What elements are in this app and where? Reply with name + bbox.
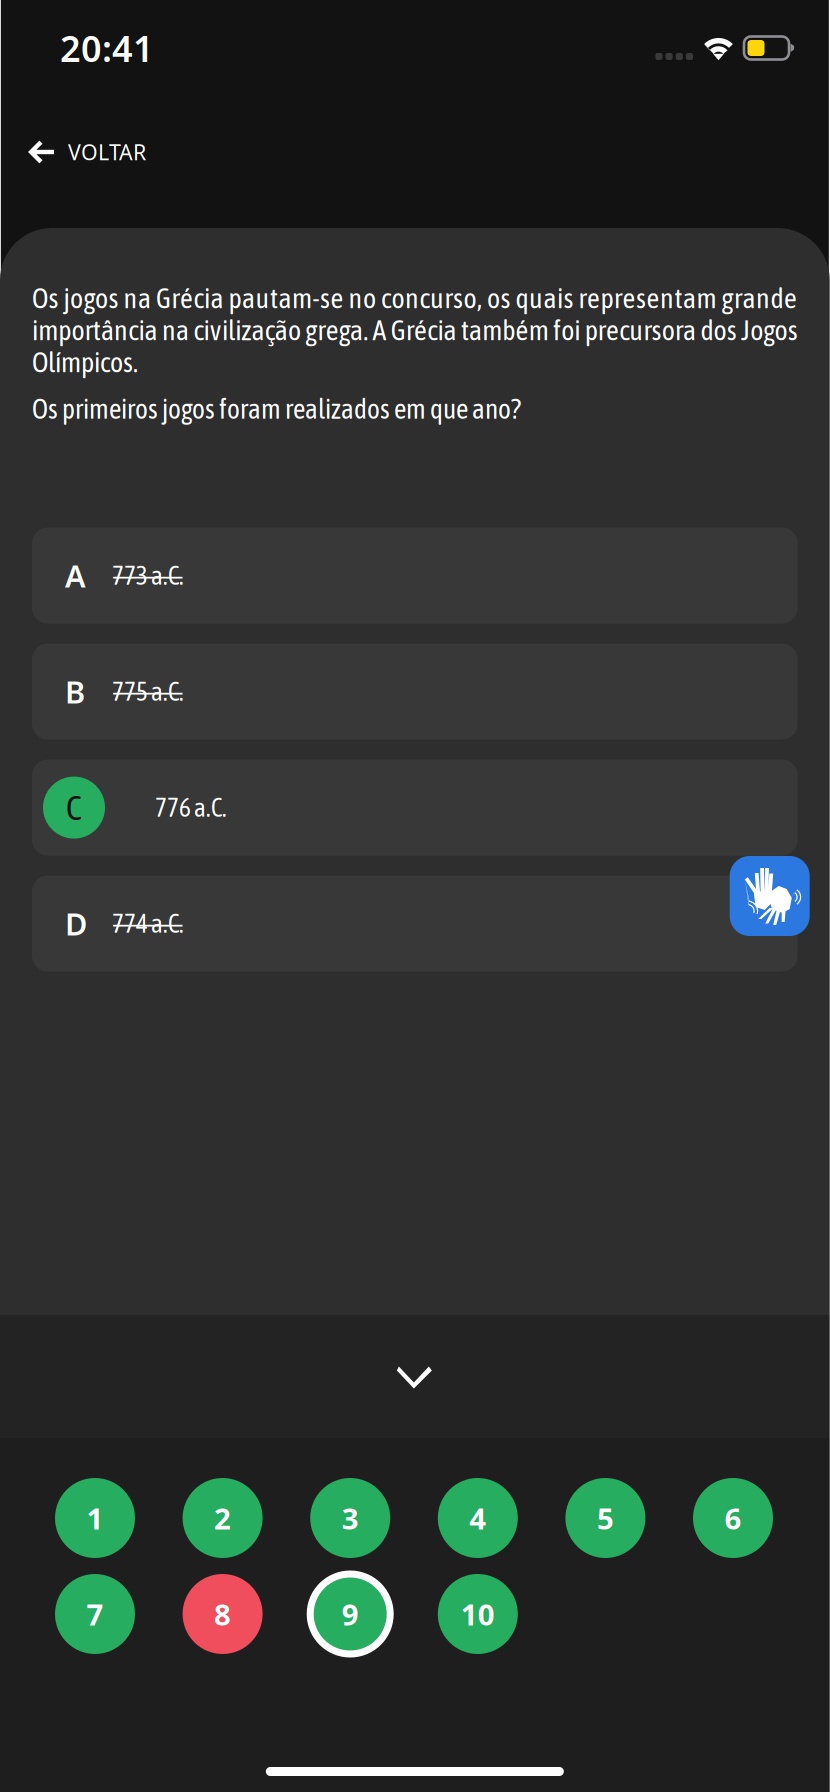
staticText: D <box>65 903 87 944</box>
staticText: 1 <box>86 1498 103 1537</box>
staticText: 6 <box>724 1498 741 1537</box>
staticText: 8 <box>214 1594 231 1633</box>
staticText: A <box>65 555 86 596</box>
staticText: Os primeiros jogos foram realizados em q… <box>32 393 521 425</box>
button[interactable]: 7 <box>55 1574 135 1654</box>
staticText: C <box>66 788 82 827</box>
button[interactable]: C <box>32 760 798 856</box>
staticText: 775 a.C. <box>112 677 184 706</box>
staticText: 774 a.C. <box>112 909 184 938</box>
button[interactable]: A <box>32 528 798 624</box>
button[interactable]: VOLTAR <box>0 124 146 200</box>
staticText: 10 <box>461 1594 495 1633</box>
button[interactable]: D <box>32 876 798 972</box>
staticText: 2 <box>214 1498 231 1537</box>
button[interactable]: B <box>32 644 798 740</box>
button[interactable]: Libras <box>730 856 810 936</box>
staticText: importância na civilização grega. A Gréc… <box>32 314 798 346</box>
staticText: B <box>65 671 85 712</box>
button[interactable]: 4 <box>438 1478 518 1558</box>
button[interactable]: 10 <box>438 1574 518 1654</box>
staticText: VOLTAR <box>68 138 146 166</box>
staticText: 20:41 <box>60 24 154 72</box>
staticText: 776 a.C. <box>155 793 227 822</box>
staticText: 5 <box>597 1498 614 1537</box>
button[interactable]: 1 <box>55 1478 135 1558</box>
staticText: 773 a.C. <box>112 561 184 590</box>
button[interactable]: 9 <box>310 1574 390 1654</box>
staticText: 9 <box>342 1594 359 1633</box>
button[interactable]: 6 <box>693 1478 773 1558</box>
button[interactable]: Expandir <box>0 1315 830 1438</box>
staticText: Os jogos na Grécia pautam-se no concurso… <box>32 282 797 314</box>
staticText: 7 <box>86 1594 103 1633</box>
staticText: Olímpicos. <box>32 346 138 378</box>
button[interactable]: 8 <box>183 1574 263 1654</box>
button[interactable]: 2 <box>183 1478 263 1558</box>
button[interactable]: 3 <box>310 1478 390 1558</box>
button[interactable]: 5 <box>565 1478 645 1558</box>
staticText: 4 <box>469 1498 486 1537</box>
staticText: 3 <box>342 1498 359 1537</box>
